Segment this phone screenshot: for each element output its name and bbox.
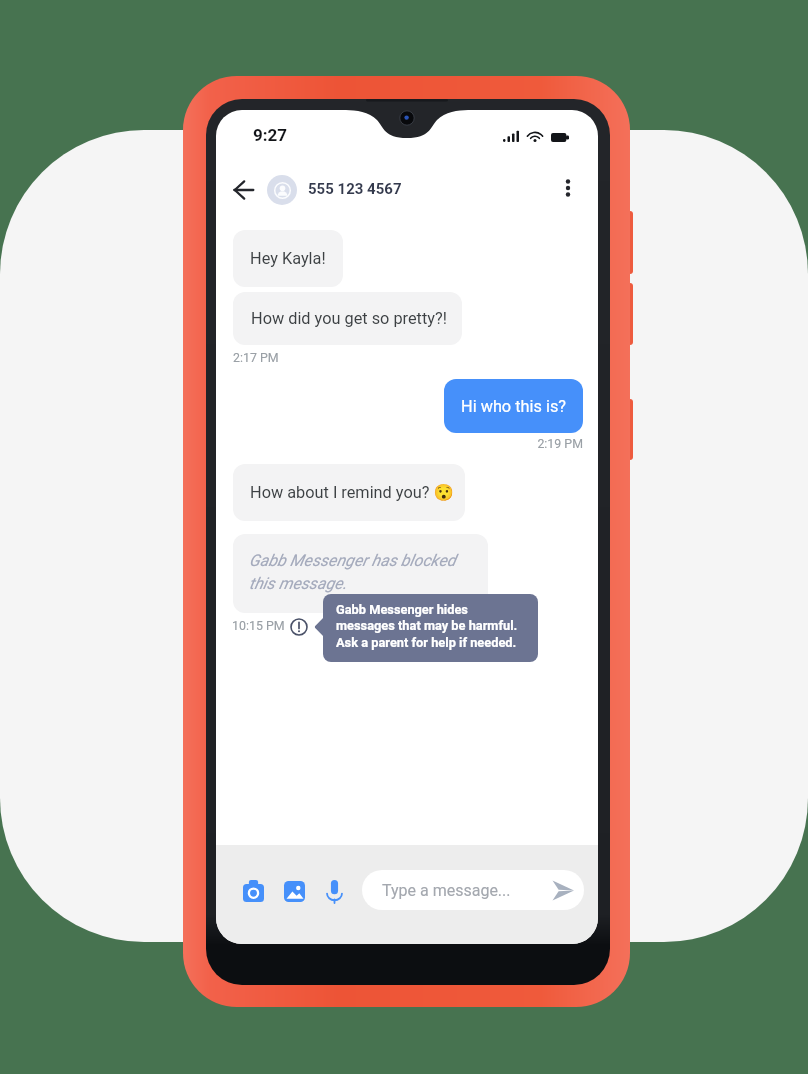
- staticText: Hi who this is?: [461, 397, 566, 416]
- button[interactable]: Send: [548, 876, 578, 904]
- button[interactable]: How did you get so pretty?!: [233, 292, 462, 345]
- staticText: How did you get so pretty?!: [251, 309, 447, 328]
- button[interactable]: Hi who this is?: [444, 379, 583, 433]
- button[interactable]: Camera: [243, 880, 264, 902]
- button[interactable]: How about I remind you? 😯: [233, 464, 465, 521]
- staticText: 9:27: [253, 125, 288, 145]
- button[interactable]: Contact avatar: [267, 175, 297, 205]
- staticText: 10:15 PM: [232, 618, 285, 633]
- staticText: Type a message...: [382, 881, 511, 900]
- staticText: 2:19 PM: [507, 436, 583, 451]
- button[interactable]: More options: [548, 168, 588, 208]
- staticText: Hey Kayla!: [250, 249, 326, 268]
- button[interactable]: Back: [222, 168, 266, 212]
- button[interactable]: Hey Kayla!: [233, 230, 343, 287]
- staticText: Gabb Messenger hides messages that may b…: [336, 602, 518, 651]
- staticText: 2:17 PM: [233, 350, 279, 365]
- button[interactable]: 555 123 4567: [308, 180, 402, 198]
- button[interactable]: Type a message...: [362, 870, 584, 910]
- staticText: How about I remind you? 😯: [250, 483, 454, 502]
- staticText: Gabb Messenger has blocked this message.: [249, 551, 456, 593]
- button[interactable]: Gabb Messenger hides messages that may b…: [323, 594, 538, 662]
- button[interactable]: Voice message: [326, 880, 343, 903]
- button[interactable]: Send photo: [284, 881, 305, 902]
